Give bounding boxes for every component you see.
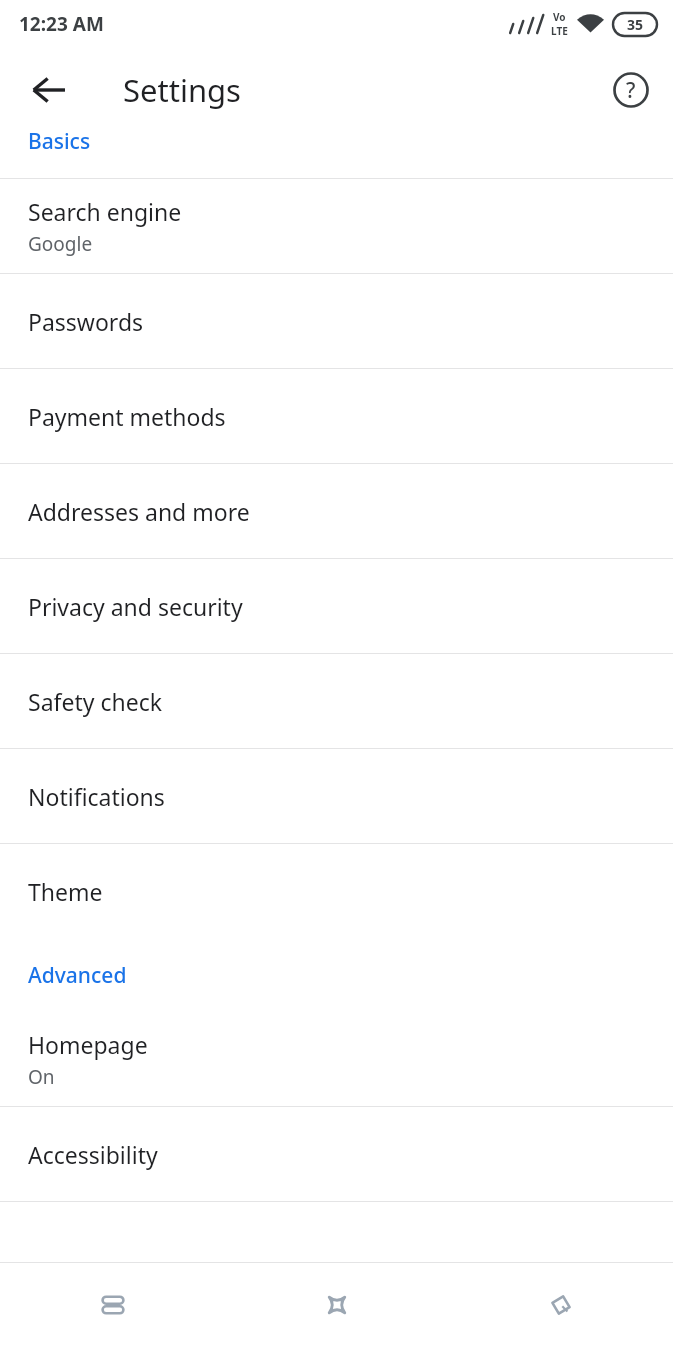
staticText: Homepage	[28, 1029, 148, 1060]
staticText: Passwords	[28, 306, 144, 337]
staticText: ?	[626, 76, 636, 105]
staticText: 35	[627, 15, 644, 34]
staticText: Payment methods	[28, 401, 226, 432]
button[interactable]: Passwords	[0, 274, 673, 368]
button[interactable]: Home	[225, 1263, 449, 1346]
button[interactable]: Accessibility	[0, 1107, 673, 1201]
staticText: Privacy and security	[28, 591, 243, 622]
staticText: Basics	[28, 132, 91, 156]
staticText: Safety check	[28, 686, 162, 717]
button[interactable]: Homepage	[0, 1012, 673, 1106]
staticText: Addresses and more	[28, 496, 250, 527]
staticText: Vo	[553, 10, 566, 24]
button[interactable]: Notifications	[0, 749, 673, 843]
staticText: Search engine	[28, 196, 182, 227]
button[interactable]: Back	[21, 62, 77, 118]
button[interactable]: Recents	[0, 1263, 225, 1346]
staticText: 12:23 AM	[19, 11, 104, 37]
staticText: Theme	[28, 876, 103, 907]
staticText: On	[28, 1064, 55, 1090]
button[interactable]: Addresses and more	[0, 464, 673, 558]
staticText: Advanced	[28, 961, 127, 990]
button[interactable]: Theme	[0, 844, 673, 938]
staticText: LTE	[551, 24, 568, 38]
staticText: Notifications	[28, 781, 165, 812]
staticText: Accessibility	[28, 1139, 158, 1170]
button[interactable]: Back	[449, 1263, 673, 1346]
button[interactable]: Payment methods	[0, 369, 673, 463]
staticText: Settings	[123, 69, 241, 111]
button[interactable]: Privacy and security	[0, 559, 673, 653]
button[interactable]: Search engine	[0, 179, 673, 273]
staticText: Google	[28, 231, 93, 257]
button[interactable]: Help	[603, 62, 659, 118]
button[interactable]: Safety check	[0, 654, 673, 748]
